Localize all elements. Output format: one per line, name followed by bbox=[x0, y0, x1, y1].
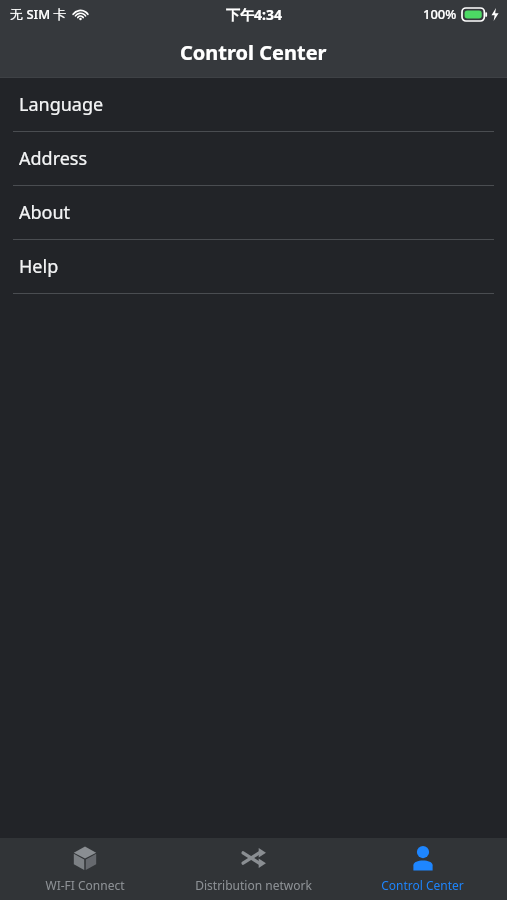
button[interactable]: Control Center bbox=[338, 838, 507, 900]
button[interactable]: WI-FI Connect bbox=[0, 838, 169, 900]
staticText: Control Center bbox=[381, 877, 464, 893]
staticText: About bbox=[19, 200, 71, 225]
staticText: 无 SIM 卡 bbox=[10, 5, 67, 23]
button[interactable]: About bbox=[0, 186, 507, 240]
staticText: WI-FI Connect bbox=[45, 877, 125, 893]
button[interactable]: Address bbox=[0, 132, 507, 186]
staticText: Distribution network bbox=[195, 877, 312, 893]
staticText: Control Center bbox=[180, 39, 327, 66]
staticText: 100% bbox=[423, 5, 457, 23]
staticText: Help bbox=[19, 254, 59, 279]
staticText: Address bbox=[19, 146, 88, 171]
staticText: 下午4:34 bbox=[226, 5, 282, 24]
button[interactable]: Distribution network bbox=[169, 838, 338, 900]
button[interactable]: Language bbox=[0, 78, 507, 132]
button[interactable]: Help bbox=[0, 240, 507, 294]
staticText: Language bbox=[19, 92, 104, 117]
